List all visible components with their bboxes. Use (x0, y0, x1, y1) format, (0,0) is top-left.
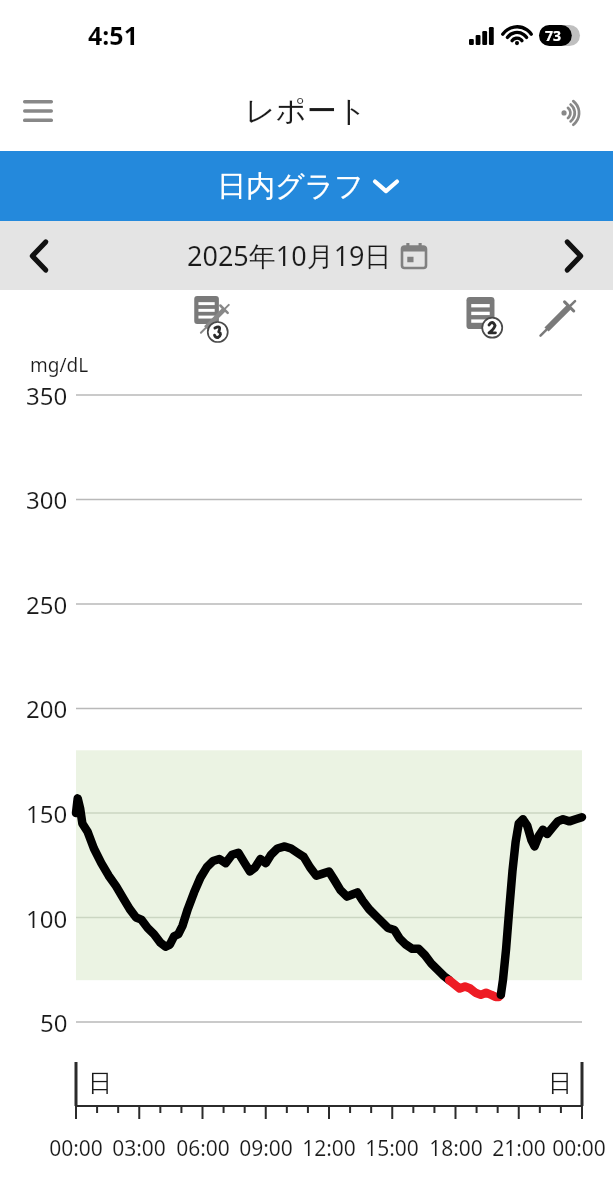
button[interactable]: 日内グラフ (0, 151, 613, 221)
staticText: 03:00 (112, 1134, 166, 1163)
staticText: 300 (26, 483, 68, 516)
staticText: 100 (26, 902, 68, 935)
staticText: 4:51 (88, 18, 138, 52)
staticText: 00:00 (552, 1134, 606, 1163)
staticText: 73 (545, 26, 562, 45)
staticText: 15:00 (365, 1134, 419, 1163)
staticText: レポート (245, 92, 368, 130)
staticText: 日 (548, 1068, 572, 1098)
staticText: 12:00 (302, 1134, 356, 1163)
staticText: 350 (26, 379, 68, 412)
staticText: 50 (40, 1006, 68, 1039)
staticText: 150 (26, 797, 68, 830)
staticText: 06:00 (176, 1134, 230, 1163)
staticText: 日 (88, 1068, 112, 1098)
button[interactable]: Notes, 2 (462, 294, 518, 344)
staticText: 日内グラフ (217, 168, 365, 205)
staticText: 00:00 (49, 1134, 103, 1163)
staticText: 200 (26, 692, 68, 725)
button[interactable]: 2025年10月19日 (187, 237, 426, 274)
button[interactable]: Previous day (12, 229, 66, 283)
staticText: 21:00 (492, 1134, 546, 1163)
button[interactable]: Insulin injection (534, 294, 586, 342)
staticText: 09:00 (239, 1134, 293, 1163)
staticText: mg/dL (30, 352, 89, 378)
staticText: 2025年10月19日 (187, 237, 392, 274)
button[interactable]: Next day (547, 229, 601, 283)
button[interactable]: Transmitter signal (547, 85, 599, 137)
button[interactable]: Menu (12, 85, 64, 137)
staticText: 18:00 (429, 1134, 483, 1163)
staticText: 250 (26, 588, 68, 621)
button[interactable]: Meal and insulin events, 3 (192, 294, 248, 344)
